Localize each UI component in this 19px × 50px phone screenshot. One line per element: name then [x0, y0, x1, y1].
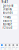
- staticText: Storage: [2, 22, 12, 26]
- button[interactable]: Home: [0, 44, 4, 50]
- button[interactable]: Radio: [11, 44, 15, 50]
- staticText: Sounds: [2, 11, 12, 14]
- staticText: Search: [8, 46, 11, 50]
- button[interactable]: Search: [8, 44, 11, 50]
- staticText: Home: [0, 46, 3, 50]
- button[interactable]: iCloud: [1, 26, 17, 29]
- button[interactable]: Storage: [1, 23, 17, 26]
- staticText: Privacy: [2, 15, 10, 19]
- button[interactable]: Shows: [4, 44, 8, 50]
- staticText: iCloud: [2, 26, 12, 29]
- button[interactable]: Privacy: [1, 16, 17, 19]
- button[interactable]: More: [15, 44, 19, 50]
- staticText: 9:41: [1, 0, 8, 4]
- staticText: Radio: [12, 46, 15, 50]
- button[interactable]: General: [1, 4, 17, 7]
- staticText: General: [2, 4, 13, 7]
- button[interactable]: Sounds: [1, 11, 17, 14]
- staticText: Battery: [2, 19, 11, 22]
- staticText: More: [16, 46, 19, 50]
- button[interactable]: Battery: [1, 19, 17, 22]
- staticText: Shows: [4, 46, 7, 50]
- button[interactable]: Display: [1, 7, 17, 11]
- staticText: Display: [2, 7, 11, 11]
